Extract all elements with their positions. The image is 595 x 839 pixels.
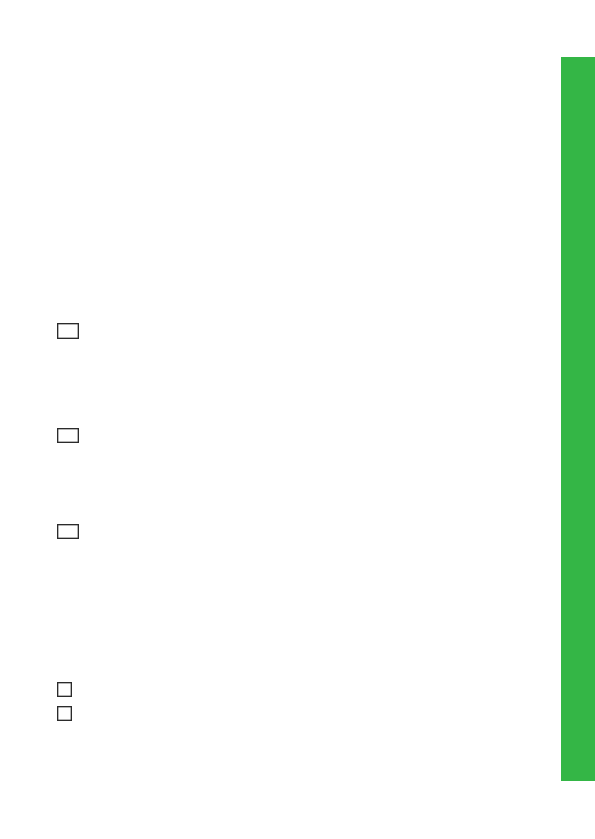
button[interactable]: Footer icon 1 xyxy=(57,682,72,697)
button[interactable]: Article image 1 xyxy=(57,323,79,339)
button[interactable]: Article image 3 xyxy=(57,524,79,539)
button[interactable]: Article image 2 xyxy=(57,428,79,443)
button[interactable]: Footer icon 2 xyxy=(57,706,72,721)
